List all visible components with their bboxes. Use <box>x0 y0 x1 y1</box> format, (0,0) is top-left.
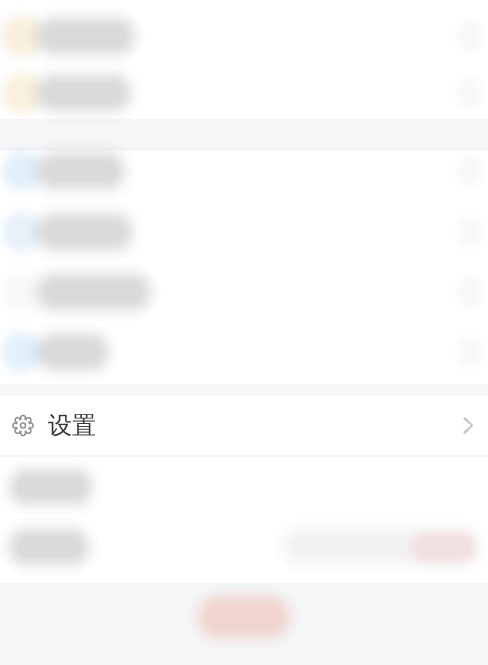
button[interactable]: 设置 <box>0 396 488 455</box>
button[interactable] <box>0 518 488 576</box>
button[interactable] <box>0 263 488 321</box>
button[interactable] <box>0 458 488 516</box>
button[interactable] <box>0 203 488 261</box>
button[interactable] <box>0 323 488 381</box>
button[interactable] <box>0 7 488 65</box>
staticText: 设置 <box>48 411 96 440</box>
button[interactable] <box>0 142 488 200</box>
button[interactable] <box>0 64 488 122</box>
